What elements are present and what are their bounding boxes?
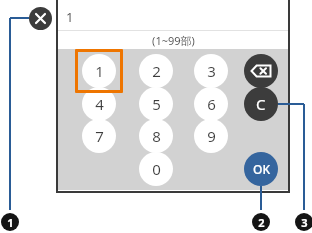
button[interactable]: 0 [139, 152, 173, 186]
staticText: 8 [152, 126, 161, 146]
staticText: 1 [7, 215, 14, 230]
button[interactable]: C [244, 87, 278, 121]
staticText: 7 [95, 126, 104, 146]
staticText: 2 [152, 61, 161, 81]
button[interactable]: 7 [82, 119, 116, 153]
staticText: 5 [152, 94, 161, 114]
staticText: 0 [152, 159, 161, 179]
staticText: 6 [207, 94, 216, 114]
button[interactable]: Close [29, 7, 52, 30]
button[interactable]: OK [244, 152, 278, 186]
staticText: OK [253, 161, 270, 177]
button[interactable]: 2 [139, 54, 173, 88]
button[interactable]: 6 [194, 87, 228, 121]
staticText: 3 [301, 215, 308, 230]
staticText: 4 [95, 94, 104, 114]
button[interactable]: 5 [139, 87, 173, 121]
staticText: 2 [258, 215, 265, 230]
button[interactable]: 1 [82, 54, 116, 88]
staticText: (1~99部) [152, 33, 195, 48]
button[interactable]: 9 [194, 119, 228, 153]
button[interactable]: Backspace [244, 54, 278, 88]
button[interactable]: 8 [139, 119, 173, 153]
button[interactable]: 4 [82, 87, 116, 121]
staticText: 3 [207, 61, 216, 81]
staticText: 1 [95, 61, 104, 81]
staticText: 9 [207, 126, 216, 146]
staticText: 1 [66, 8, 74, 26]
staticText: C [256, 94, 266, 114]
button[interactable]: 3 [194, 54, 228, 88]
